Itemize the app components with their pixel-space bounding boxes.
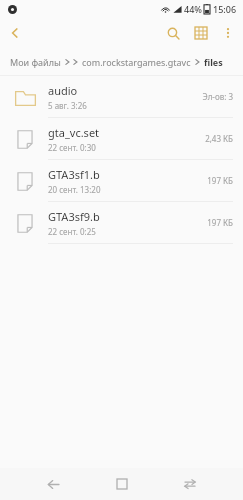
staticText: Эл-ов: 3 xyxy=(202,91,233,102)
staticText: GTA3sf1.b xyxy=(48,167,100,182)
button[interactable]: Recent apps xyxy=(174,468,206,500)
staticText: GTA3sf9.b xyxy=(48,209,100,224)
staticText: 197 КБ xyxy=(207,217,233,228)
staticText: 5 авг. 3:26 xyxy=(48,100,87,111)
staticText: files xyxy=(204,56,223,68)
button[interactable]: Мои файлы xyxy=(10,56,61,68)
staticText: gta_vc.set xyxy=(48,125,100,140)
button[interactable]: GTA3sf1.b xyxy=(0,160,243,201)
staticText: 197 КБ xyxy=(207,175,233,186)
button[interactable]: com.rockstargames.gtavc xyxy=(82,56,191,68)
staticText: Мои файлы xyxy=(10,56,61,68)
button[interactable]: audio xyxy=(0,76,243,117)
button[interactable]: More options xyxy=(215,20,241,46)
staticText: com.rockstargames.gtavc xyxy=(82,56,191,68)
button[interactable]: GTA3sf9.b xyxy=(0,202,243,243)
button[interactable]: gta_vc.set xyxy=(0,118,243,159)
staticText: audio xyxy=(48,83,78,98)
button[interactable]: Back xyxy=(37,468,69,500)
staticText: 2,43 КБ xyxy=(205,133,233,144)
button[interactable]: Back xyxy=(0,18,30,48)
staticText: 20 сент. 13:20 xyxy=(48,184,101,195)
button[interactable]: files xyxy=(204,56,223,68)
staticText: 22 сент. 0:30 xyxy=(48,142,96,153)
button[interactable]: Grid view xyxy=(187,19,215,47)
button[interactable]: Home xyxy=(106,468,138,500)
staticText: 15:06 xyxy=(213,3,237,15)
staticText: 44% xyxy=(184,3,202,15)
staticText: 22 сент. 0:25 xyxy=(48,226,96,237)
button[interactable]: Search xyxy=(159,19,187,47)
